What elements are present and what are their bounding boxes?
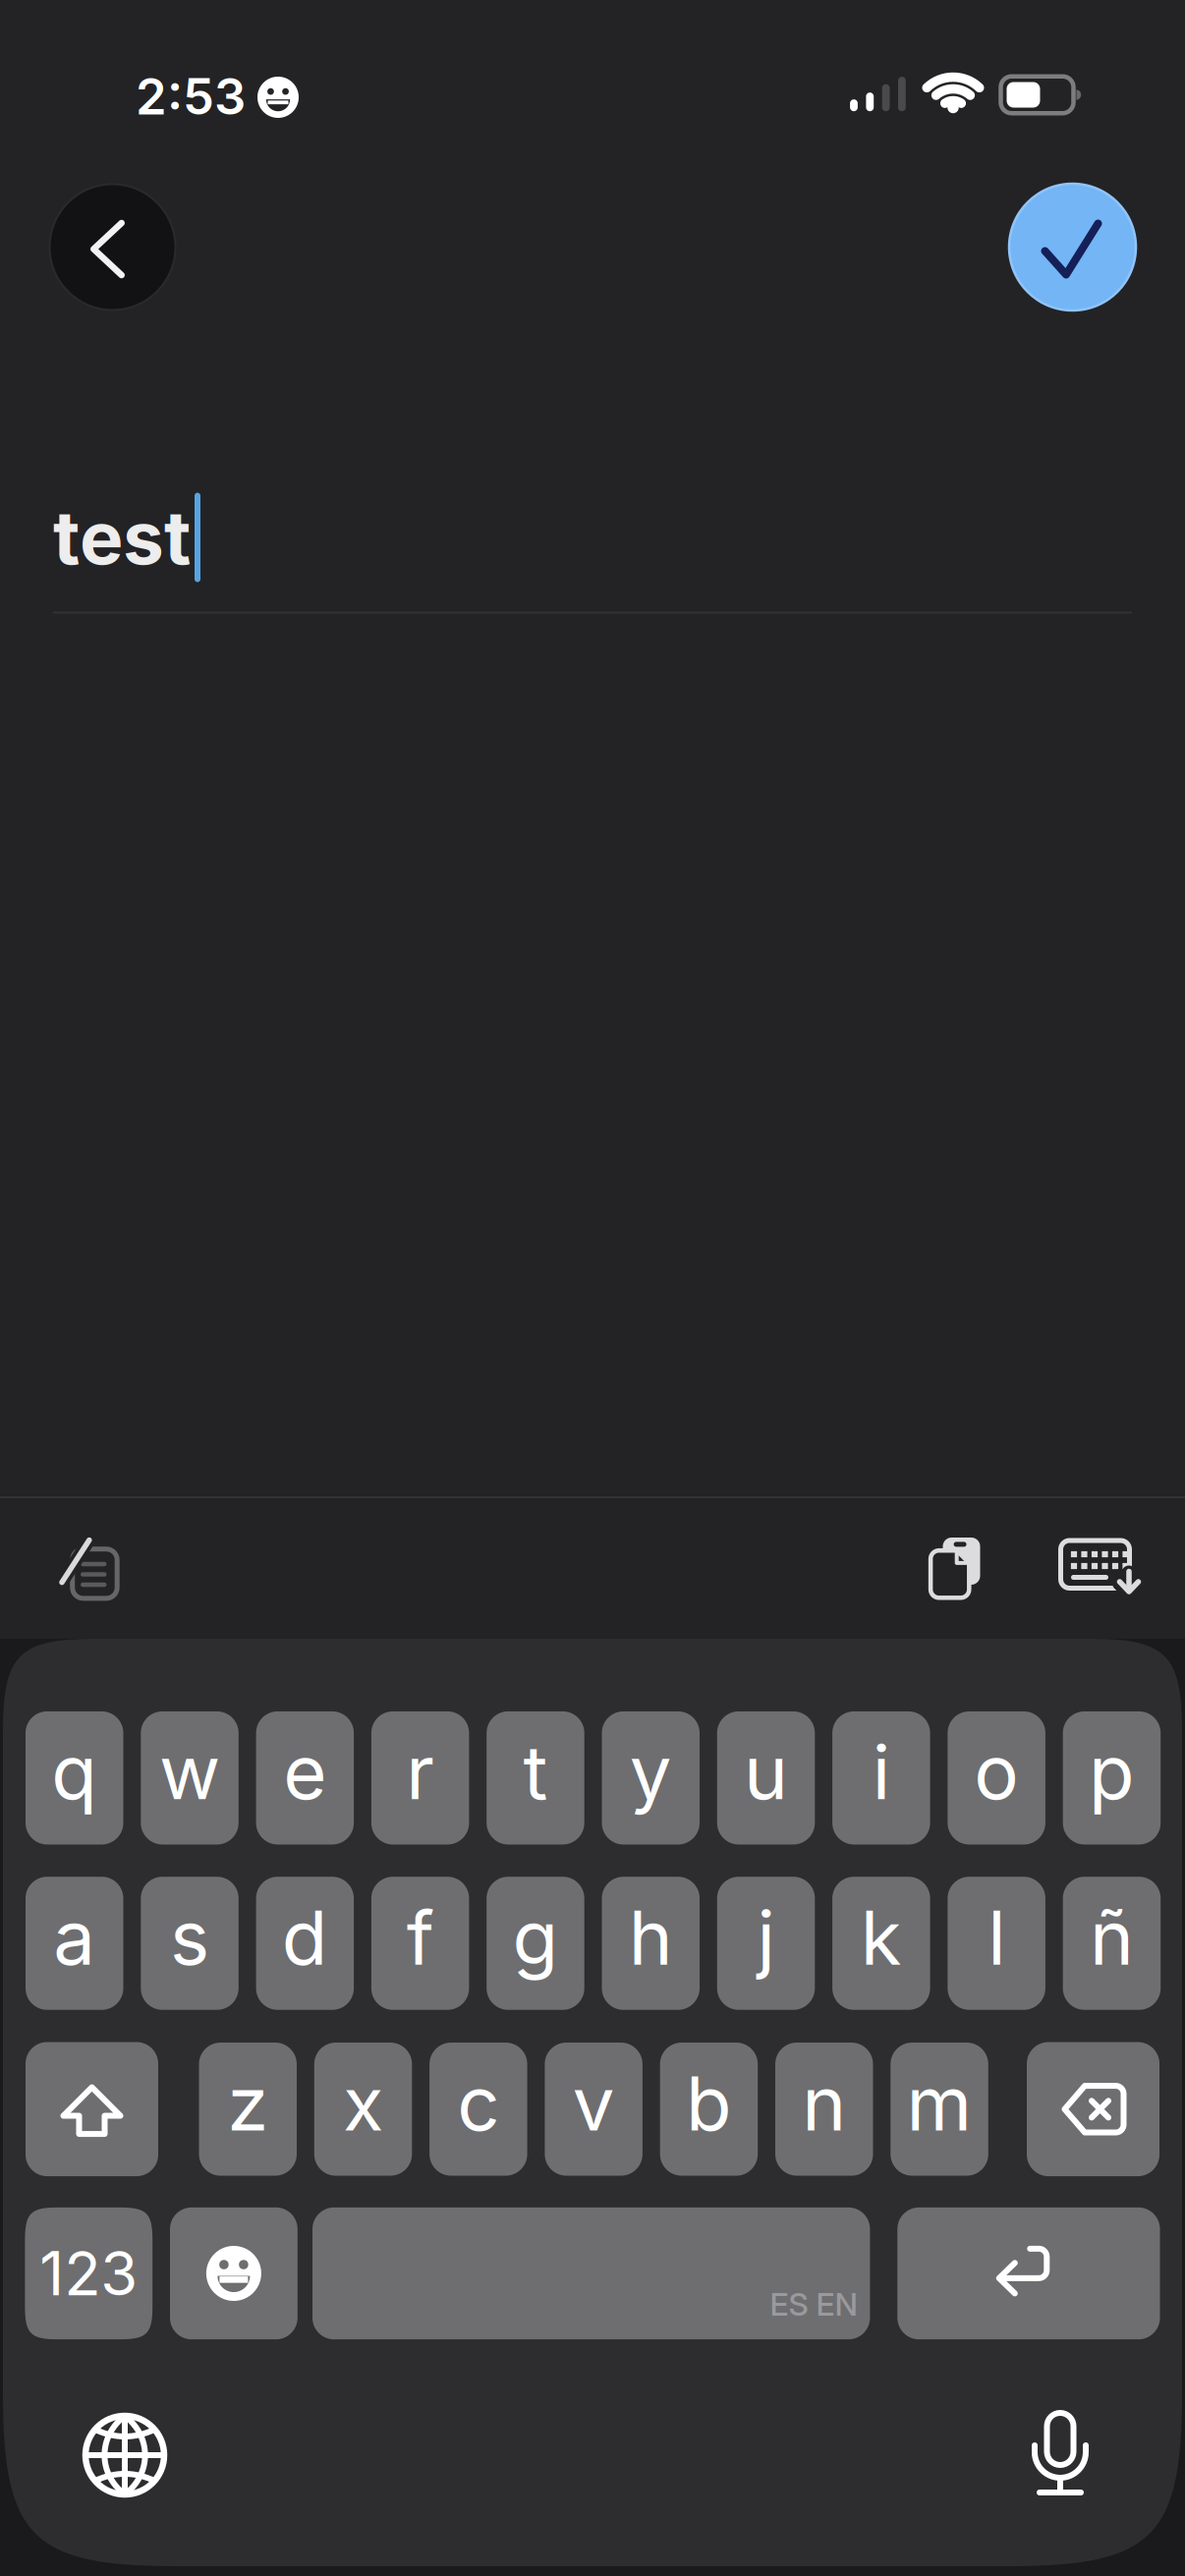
staticText: f bbox=[406, 1893, 434, 1982]
button[interactable]: w bbox=[141, 1711, 239, 1845]
staticText: 2:53 bbox=[136, 67, 246, 126]
button[interactable]: x bbox=[314, 2043, 412, 2176]
button[interactable]: Shift bbox=[26, 2042, 158, 2176]
button[interactable]: i bbox=[832, 1711, 930, 1845]
staticText: m bbox=[906, 2059, 972, 2147]
staticText: p bbox=[1089, 1728, 1135, 1816]
staticText: z bbox=[227, 2059, 268, 2147]
staticText: l bbox=[988, 1893, 1005, 1982]
staticText: t bbox=[523, 1728, 548, 1816]
button[interactable]: c bbox=[429, 2043, 527, 2176]
staticText: j bbox=[757, 1893, 775, 1982]
button[interactable]: j bbox=[717, 1877, 815, 2010]
button[interactable]: d bbox=[256, 1877, 354, 2010]
button[interactable]: Title bbox=[53, 483, 1134, 591]
staticText: y bbox=[630, 1728, 672, 1816]
button[interactable]: Delete bbox=[1027, 2042, 1159, 2176]
staticText: r bbox=[406, 1728, 434, 1816]
button[interactable]: s bbox=[141, 1877, 239, 2010]
button[interactable]: Dismiss Keyboard bbox=[1058, 1538, 1143, 1596]
staticText: g bbox=[512, 1893, 559, 1982]
button[interactable]: z bbox=[199, 2043, 297, 2176]
button[interactable]: Handwriting bbox=[42, 1538, 121, 1600]
staticText: test bbox=[53, 494, 191, 581]
button[interactable]: Space bbox=[312, 2207, 870, 2339]
button[interactable]: Emoji bbox=[170, 2207, 298, 2339]
staticText: b bbox=[686, 2059, 732, 2147]
button[interactable]: ñ bbox=[1063, 1877, 1161, 2010]
staticText: n bbox=[802, 2059, 846, 2147]
button[interactable]: e bbox=[256, 1711, 354, 1845]
staticText: s bbox=[170, 1893, 209, 1982]
button[interactable]: Next Keyboard bbox=[76, 2406, 174, 2504]
staticText: ñ bbox=[1090, 1893, 1134, 1982]
button[interactable]: n bbox=[775, 2043, 873, 2176]
button[interactable]: Back bbox=[50, 184, 175, 310]
button[interactable]: Numbers bbox=[25, 2207, 152, 2339]
staticText: o bbox=[974, 1728, 1019, 1816]
button[interactable]: l bbox=[948, 1877, 1045, 2010]
staticText: u bbox=[744, 1728, 788, 1816]
button[interactable]: t bbox=[487, 1711, 584, 1845]
button[interactable]: a bbox=[26, 1877, 123, 2010]
button[interactable]: o bbox=[948, 1711, 1045, 1845]
staticText: d bbox=[282, 1893, 328, 1982]
button[interactable]: r bbox=[371, 1711, 469, 1845]
staticText: c bbox=[457, 2059, 500, 2147]
button[interactable]: u bbox=[717, 1711, 815, 1845]
staticText: w bbox=[159, 1728, 220, 1816]
button[interactable]: Save bbox=[1009, 184, 1136, 310]
button[interactable]: Return bbox=[897, 2207, 1160, 2339]
button[interactable]: Paste bbox=[929, 1537, 980, 1598]
button[interactable]: k bbox=[832, 1877, 930, 2010]
staticText: h bbox=[629, 1893, 673, 1982]
staticText: x bbox=[343, 2059, 383, 2147]
staticText: i bbox=[872, 1728, 890, 1816]
staticText: e bbox=[283, 1728, 327, 1816]
staticText: a bbox=[53, 1893, 96, 1982]
button[interactable]: Dictation bbox=[1011, 2405, 1109, 2503]
staticText: k bbox=[861, 1893, 902, 1982]
button[interactable]: b bbox=[660, 2043, 758, 2176]
button[interactable]: v bbox=[545, 2043, 643, 2176]
staticText: 123 bbox=[40, 2238, 138, 2309]
button[interactable]: g bbox=[487, 1877, 584, 2010]
button[interactable]: f bbox=[371, 1877, 469, 2010]
button[interactable]: y bbox=[602, 1711, 700, 1845]
staticText: q bbox=[51, 1728, 97, 1816]
staticText: v bbox=[572, 2059, 615, 2147]
button[interactable]: m bbox=[891, 2043, 988, 2176]
staticText: ES EN bbox=[770, 2286, 857, 2323]
button[interactable]: q bbox=[26, 1711, 123, 1845]
button[interactable]: p bbox=[1063, 1711, 1161, 1845]
button[interactable]: h bbox=[602, 1877, 700, 2010]
